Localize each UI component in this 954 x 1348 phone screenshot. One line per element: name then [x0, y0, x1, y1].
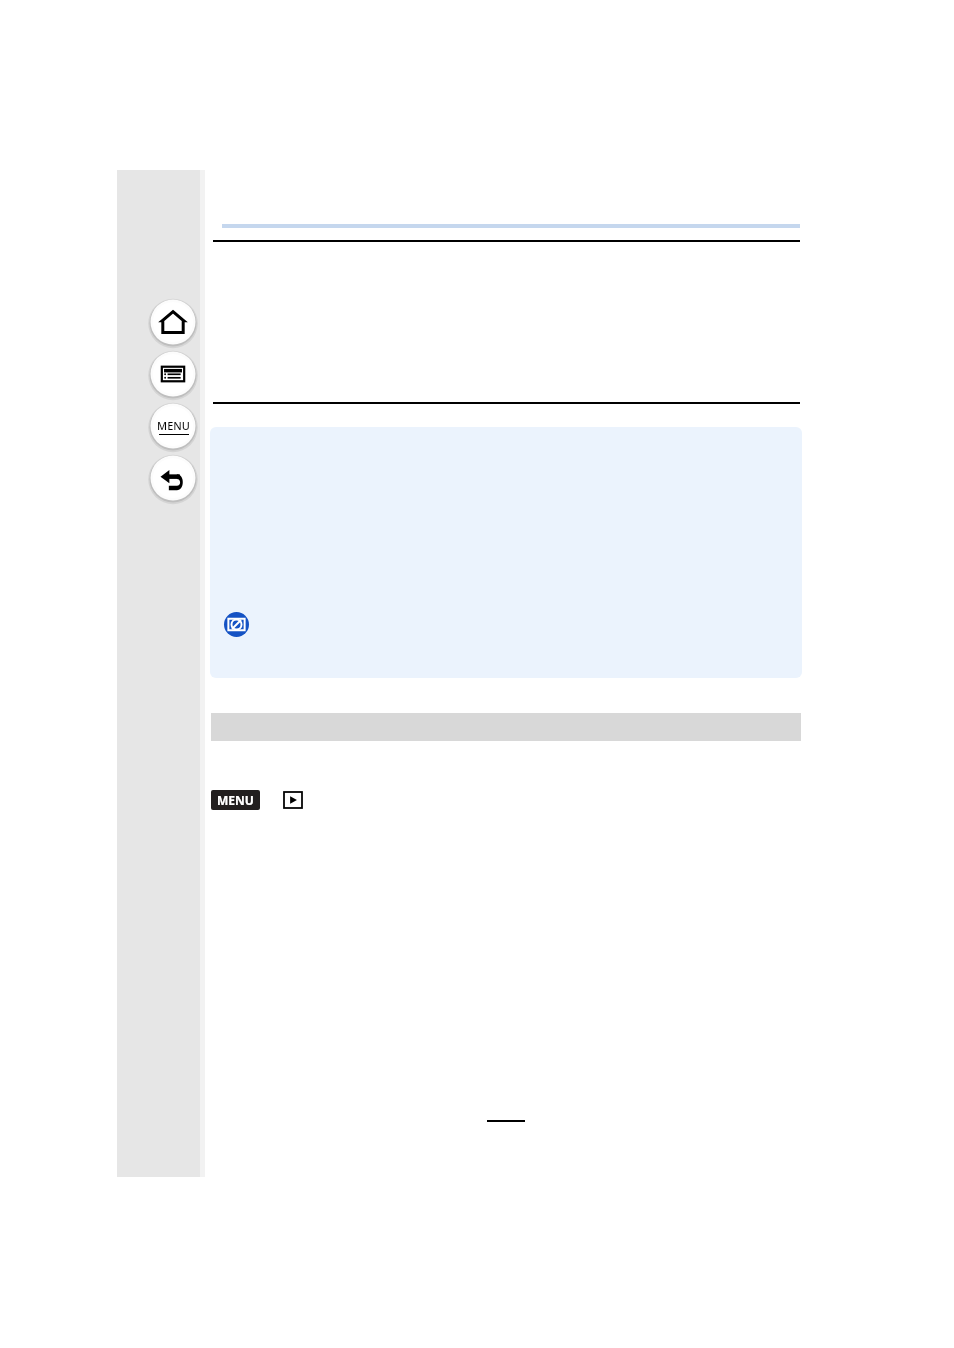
button[interactable]: Playback — [284, 792, 302, 808]
button[interactable]: Home — [148, 297, 198, 347]
button[interactable]: Back — [148, 453, 198, 503]
button[interactable]: Menu — [148, 401, 198, 451]
staticText: MENU — [157, 418, 190, 433]
staticText: MENU — [217, 792, 254, 808]
button[interactable]: MENU — [217, 792, 254, 808]
button[interactable]: Contents — [148, 349, 198, 399]
button[interactable]: No recording — [224, 612, 249, 637]
